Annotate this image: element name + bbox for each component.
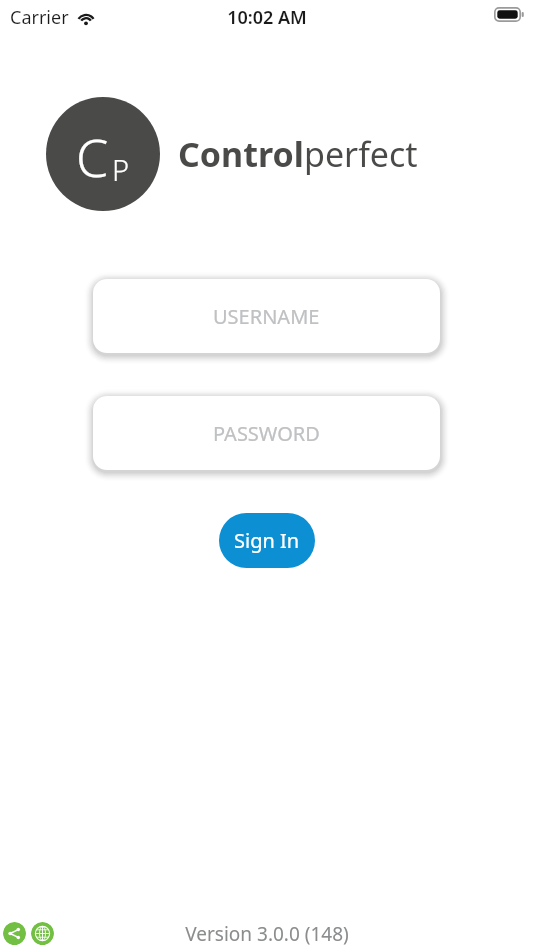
staticText: Control bbox=[178, 131, 304, 177]
button[interactable]: PASSWORD bbox=[93, 396, 440, 470]
staticText: 10:02 AM bbox=[0, 5, 534, 30]
staticText: perfect bbox=[304, 131, 418, 177]
staticText: Version 3.0.0 (148) bbox=[0, 921, 534, 947]
staticText: PASSWORD bbox=[213, 420, 320, 447]
staticText: C bbox=[76, 121, 109, 192]
button[interactable]: Share bbox=[3, 922, 26, 945]
staticText: Sign In bbox=[234, 527, 300, 554]
button[interactable]: USERNAME bbox=[93, 279, 440, 353]
staticText: P bbox=[112, 150, 130, 189]
button[interactable]: Website bbox=[31, 922, 54, 945]
staticText: Carrier bbox=[10, 5, 69, 30]
staticText: USERNAME bbox=[213, 303, 320, 330]
button[interactable]: Sign In bbox=[219, 513, 315, 568]
